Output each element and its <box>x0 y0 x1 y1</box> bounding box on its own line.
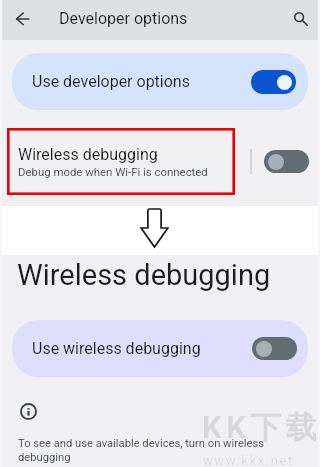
button[interactable]: Back <box>8 5 36 33</box>
button[interactable]: Switch on <box>251 70 296 94</box>
button[interactable]: Search <box>285 5 313 33</box>
button[interactable]: Switch off <box>264 150 309 173</box>
staticText: Wireless debugging <box>18 145 158 164</box>
button[interactable]: Use developer options <box>12 53 308 110</box>
button[interactable]: Switch off <box>252 337 297 360</box>
staticText: To see and use available devices, turn o… <box>18 437 265 463</box>
staticText: Use developer options <box>32 72 190 91</box>
button[interactable]: Wireless debugging <box>7 128 235 195</box>
staticText: Developer options <box>59 9 188 28</box>
staticText: Wireless debugging <box>17 258 271 292</box>
staticText: www.kkx.net <box>203 453 294 467</box>
staticText: KK下载 <box>202 408 320 447</box>
staticText: Use wireless debugging <box>32 339 201 358</box>
staticText: Debug mode when Wi-Fi is connected <box>18 165 208 178</box>
button[interactable]: Use wireless debugging <box>12 320 308 377</box>
